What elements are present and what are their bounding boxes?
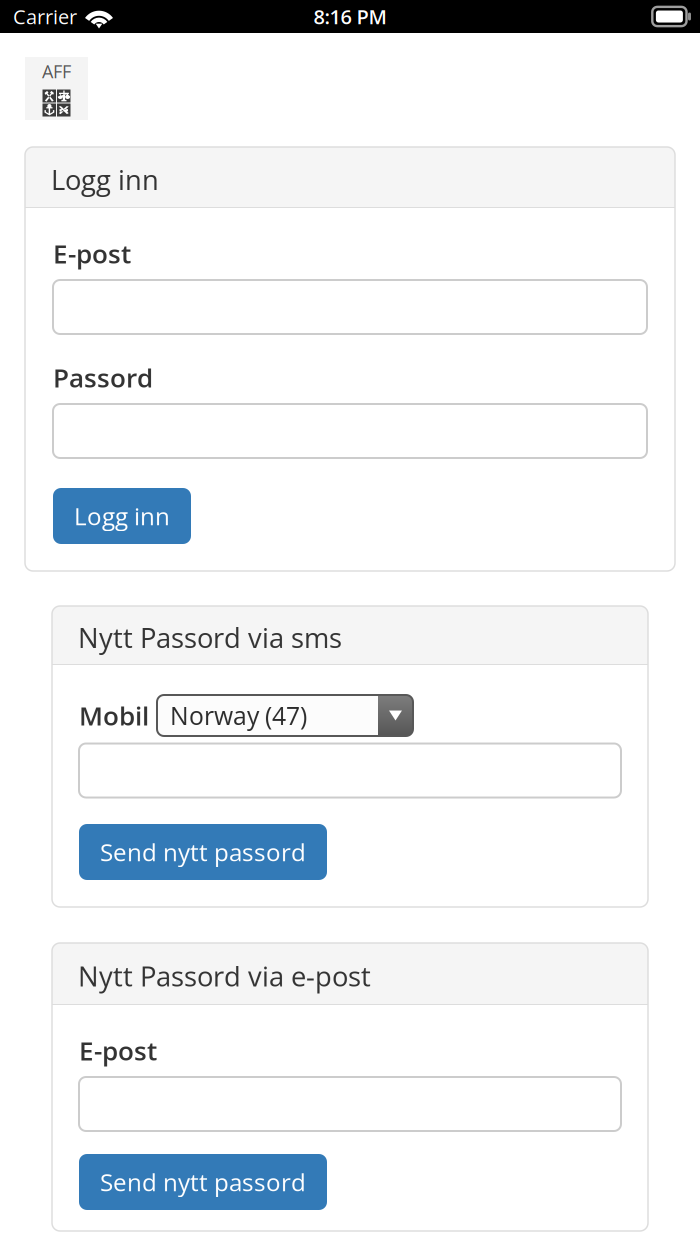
staticText: 8:16 PM	[313, 3, 386, 30]
staticText: Nytt Passord via sms	[78, 619, 342, 656]
button[interactable]: Logg inn	[53, 488, 191, 544]
staticText: Logg inn	[51, 161, 159, 198]
button[interactable]: Send nytt passord	[79, 1154, 327, 1210]
button[interactable]: Send nytt passord	[79, 824, 327, 880]
staticText: Norway (47)	[170, 699, 307, 732]
staticText: Nytt Passord via e-post	[78, 957, 371, 995]
staticText: E-post	[53, 236, 131, 271]
staticText: Logg inn	[74, 500, 170, 532]
staticText: Send nytt passord	[100, 1166, 306, 1198]
staticText: Carrier	[13, 3, 77, 30]
staticText: Send nytt passord	[100, 836, 306, 868]
staticText: E-post	[79, 1033, 157, 1068]
staticText: Mobil	[79, 698, 149, 733]
staticText: Passord	[53, 360, 153, 395]
staticText: AFF	[42, 59, 71, 83]
button[interactable]: Norway (47)	[157, 695, 413, 736]
